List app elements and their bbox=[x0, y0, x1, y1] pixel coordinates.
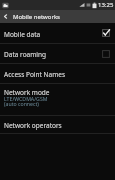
button[interactable]: Back bbox=[0, 10, 115, 23]
staticText: Network mode bbox=[4, 88, 50, 97]
staticText: (auto connect) bbox=[4, 100, 39, 107]
button[interactable]: Network mode bbox=[0, 84, 115, 115]
staticText: Data roaming bbox=[4, 50, 46, 59]
staticText: Access Point Names bbox=[4, 70, 66, 79]
staticText: Mobile networks bbox=[13, 13, 60, 21]
staticText: Mobile data bbox=[4, 30, 41, 39]
other: Back bbox=[3, 14, 8, 19]
staticText: Network operators bbox=[4, 121, 62, 130]
staticText: 13:25 bbox=[98, 1, 114, 9]
button[interactable]: Access Point Names bbox=[0, 64, 115, 83]
staticText: LTE/WCDMA/GSM bbox=[4, 95, 48, 102]
button[interactable]: Data roaming bbox=[0, 44, 115, 63]
button[interactable]: Network operators bbox=[0, 116, 115, 133]
button[interactable]: Mobile data bbox=[0, 23, 115, 43]
